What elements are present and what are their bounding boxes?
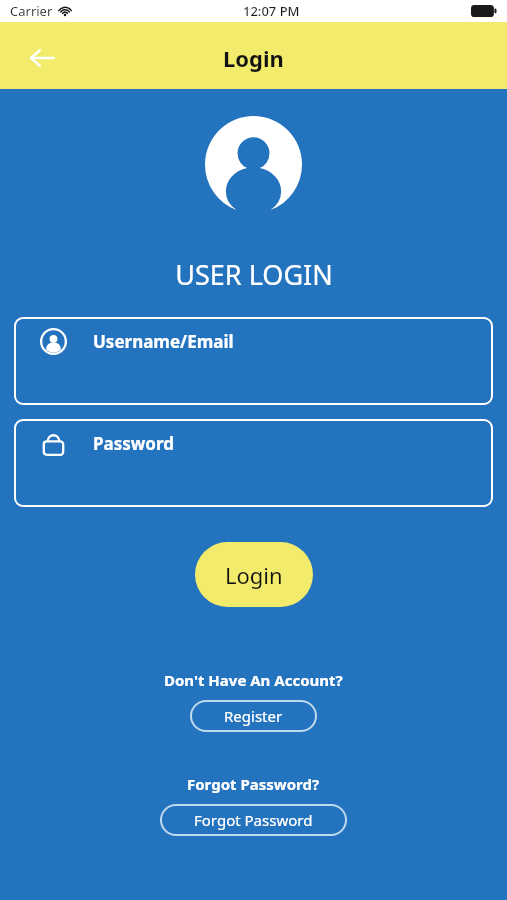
button[interactable]: Login — [195, 542, 313, 607]
staticText: Register — [224, 706, 283, 726]
button[interactable]: Username/Email — [14, 317, 493, 405]
button[interactable]: Forgot Password — [160, 804, 347, 836]
staticText: Password — [93, 432, 174, 455]
button[interactable]: Register — [190, 700, 317, 732]
button[interactable]: Back — [18, 34, 66, 82]
staticText: Username/Email — [93, 330, 234, 353]
staticText: Forgot Password? — [187, 774, 320, 794]
staticText: Don't Have An Account? — [164, 670, 343, 690]
staticText: Forgot Password — [194, 810, 313, 830]
staticText: Login — [223, 43, 284, 73]
button[interactable]: Password — [14, 419, 493, 507]
staticText: 12:07 PM — [243, 2, 300, 20]
staticText: Carrier — [10, 2, 53, 20]
staticText: Login — [225, 560, 283, 590]
staticText: USER LOGIN — [175, 256, 333, 293]
